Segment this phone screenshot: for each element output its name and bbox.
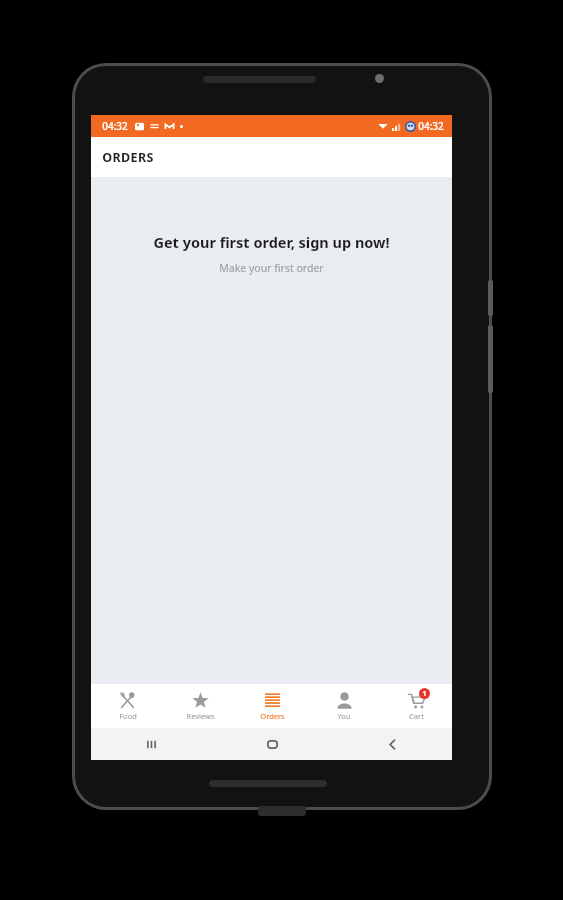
staticText: Make your first order [219,261,324,275]
staticText: 04:32 [102,119,128,133]
button[interactable]: Home [212,728,332,760]
button[interactable]: Reviews [164,684,236,728]
button[interactable]: You [308,684,380,728]
staticText: ORDERS [102,149,154,166]
staticText: Food [119,711,137,721]
button[interactable]: Back [332,728,452,760]
staticText: Orders [260,711,285,721]
staticText: 1 [422,689,427,699]
button[interactable]: Recent apps [91,728,212,760]
staticText: Reviews [186,711,215,721]
button[interactable]: Food [91,684,164,728]
button[interactable]: 1 [380,684,452,728]
staticText: 04:32 [418,119,444,133]
staticText: Cart [409,711,424,721]
button[interactable]: Orders [236,684,308,728]
staticText: Get your first order, sign up now! [153,232,390,252]
staticText: You [337,711,351,721]
